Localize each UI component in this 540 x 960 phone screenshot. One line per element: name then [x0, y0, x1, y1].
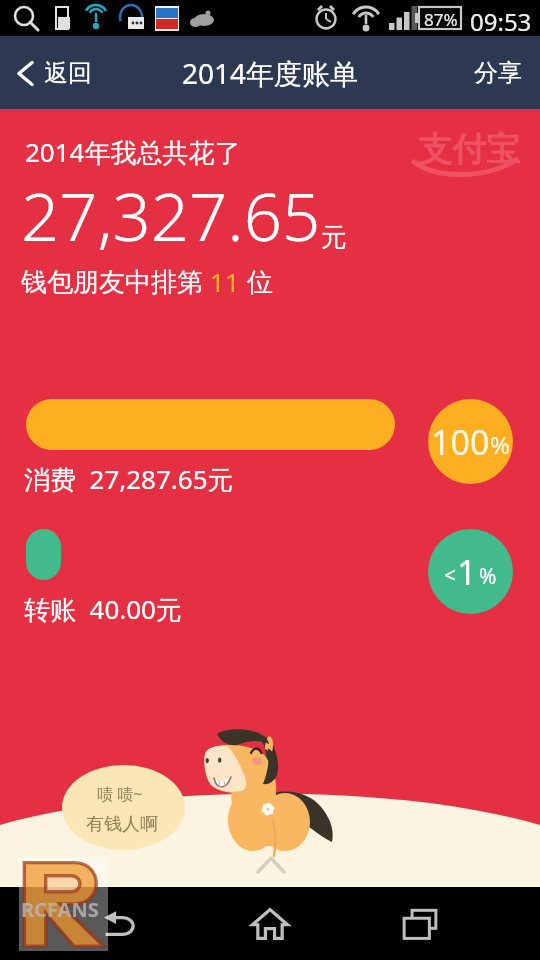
staticText: 100 [431, 419, 490, 465]
button[interactable]: Home [240, 894, 300, 954]
button[interactable]: 返回 [0, 58, 106, 88]
button[interactable]: 100 [428, 399, 513, 484]
staticText: 09:53 [470, 5, 532, 38]
staticText: 11 [203, 264, 247, 299]
staticText: 27,327.65 [21, 169, 321, 260]
staticText: 转账 40.00元 [24, 591, 182, 627]
staticText: 2014年我总共花了 [25, 134, 241, 170]
staticText: 支付宝 [418, 128, 520, 171]
button[interactable]: Back [90, 894, 150, 954]
button[interactable]: < [428, 529, 513, 614]
staticText: 有钱人啊 [86, 813, 158, 836]
staticText: 位 [247, 266, 273, 299]
staticText: 钱包朋友中排第 [21, 266, 203, 299]
staticText: 2014年度账单 [182, 54, 359, 92]
staticText: % [479, 562, 497, 591]
staticText: 87% [424, 8, 458, 31]
staticText: 消费 27,287.65元 [24, 461, 234, 497]
button[interactable]: Spending bar [26, 399, 395, 450]
button[interactable]: 分享 [456, 58, 540, 88]
staticText: % [490, 428, 510, 461]
staticText: < [444, 561, 457, 590]
staticText: 啧 啧~ [97, 783, 143, 805]
staticText: 返回 [44, 58, 92, 88]
staticText: RCFANS [21, 896, 99, 923]
staticText: 1 [457, 549, 477, 595]
button[interactable]: Transfer bar [26, 529, 61, 580]
staticText: 元 [321, 221, 347, 254]
button[interactable]: Recents [390, 894, 450, 954]
